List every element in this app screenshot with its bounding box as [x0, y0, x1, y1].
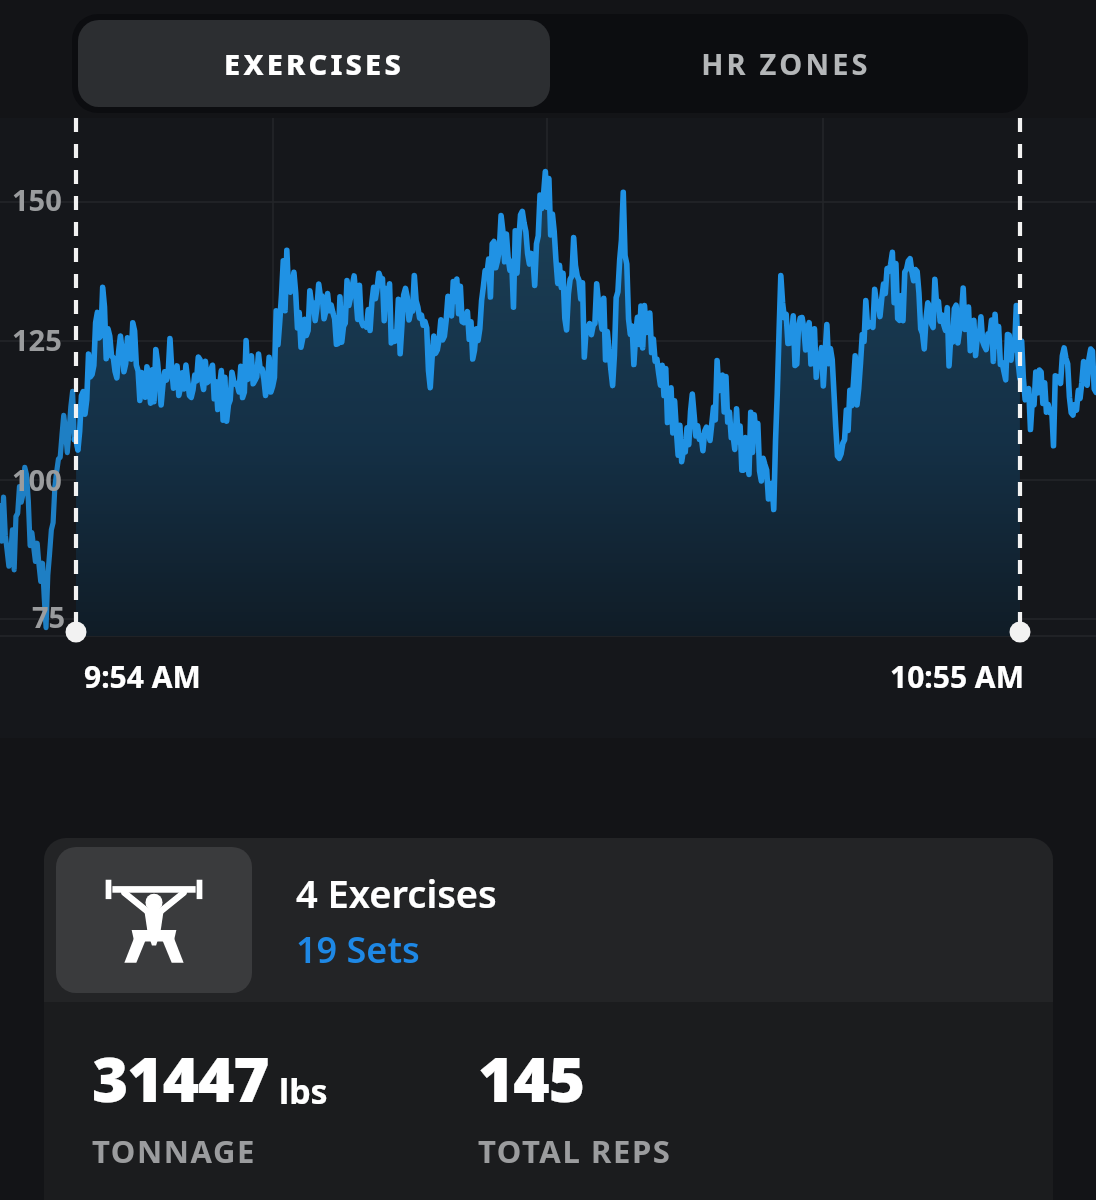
staticText: 75: [32, 597, 66, 636]
staticText: 145: [478, 1036, 584, 1120]
staticText: 10:55 AM: [890, 656, 1024, 697]
staticText: HR ZONES: [701, 44, 871, 83]
button[interactable]: Strength workout: [44, 838, 1053, 1002]
staticText: TONNAGE: [92, 1130, 257, 1172]
staticText: 19 Sets: [296, 925, 420, 974]
button[interactable]: EXERCISES: [78, 20, 550, 107]
staticText: lbs: [279, 1068, 328, 1114]
staticText: 125: [12, 320, 62, 359]
staticText: 31447: [92, 1036, 269, 1120]
staticText: 9:54 AM: [84, 656, 201, 697]
staticText: 100: [12, 460, 62, 499]
staticText: 4 Exercises: [296, 867, 497, 919]
staticText: TOTAL REPS: [478, 1130, 672, 1172]
staticText: EXERCISES: [224, 44, 404, 83]
staticText: 150: [12, 180, 62, 219]
other: Strength workout: [102, 876, 206, 964]
button[interactable]: HR ZONES: [550, 20, 1022, 107]
